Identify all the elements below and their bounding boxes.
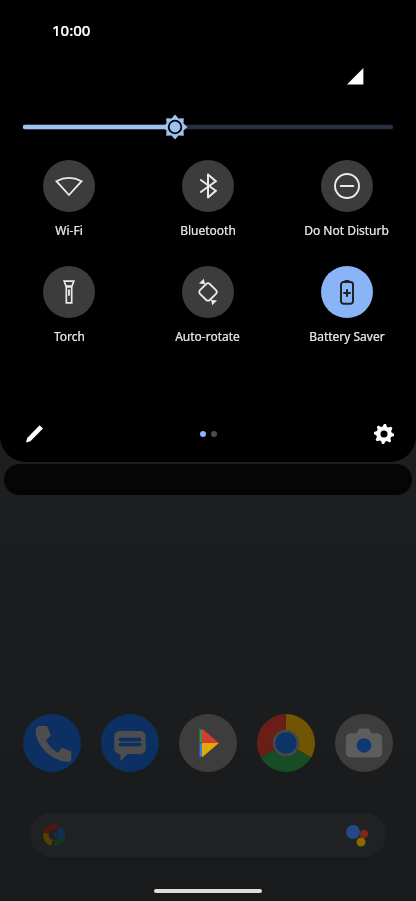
- button[interactable]: [4, 464, 412, 495]
- button[interactable]: Settings: [364, 414, 404, 454]
- button[interactable]: Search: [30, 813, 386, 857]
- staticText: Auto-rotate: [175, 328, 240, 344]
- button[interactable]: Auto-rotate: [138, 266, 277, 344]
- staticText: 10:00: [52, 20, 91, 40]
- button[interactable]: Bluetooth: [138, 160, 277, 238]
- button[interactable]: Brightness: [0, 110, 416, 144]
- button[interactable]: Edit tiles: [14, 414, 54, 454]
- button[interactable]: Wi-Fi: [0, 160, 138, 238]
- button[interactable]: Play Store: [178, 713, 238, 773]
- staticText: Bluetooth: [180, 222, 236, 238]
- button[interactable]: Do Not Disturb: [277, 160, 416, 238]
- button[interactable]: Chrome: [256, 713, 316, 773]
- button[interactable]: Messages: [100, 713, 160, 773]
- button[interactable]: Phone: [22, 713, 82, 773]
- button[interactable]: Torch: [0, 266, 138, 344]
- staticText: Wi-Fi: [55, 222, 83, 238]
- staticText: Do Not Disturb: [304, 222, 389, 238]
- button[interactable]: Battery Saver: [277, 266, 416, 344]
- button[interactable]: Camera: [334, 713, 394, 773]
- staticText: Torch: [54, 328, 85, 344]
- staticText: Battery Saver: [309, 328, 385, 344]
